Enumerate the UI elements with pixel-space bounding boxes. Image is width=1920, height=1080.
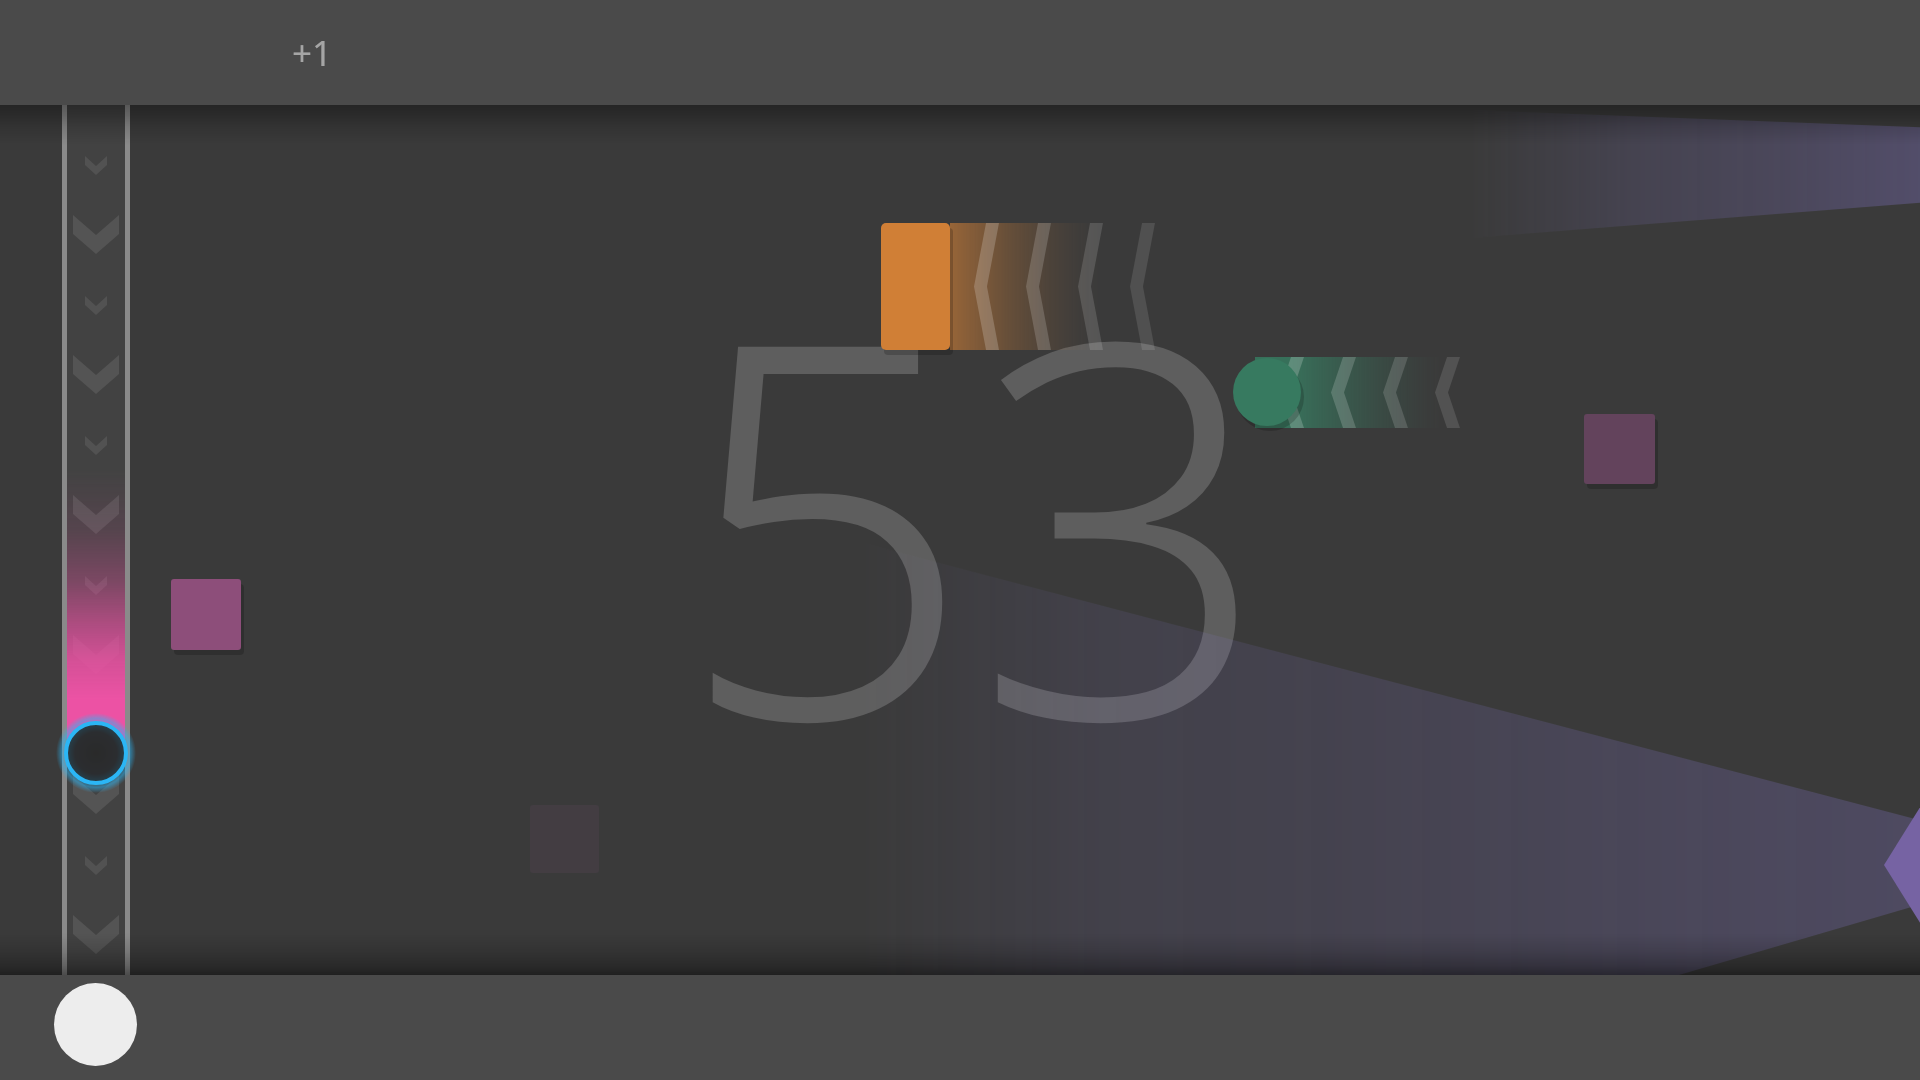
button[interactable]: Jump [54,983,137,1066]
button[interactable]: Game board, tap to switch lane [0,0,1920,1080]
staticText: +1 [292,29,333,77]
staticText: 53 [677,162,1271,870]
